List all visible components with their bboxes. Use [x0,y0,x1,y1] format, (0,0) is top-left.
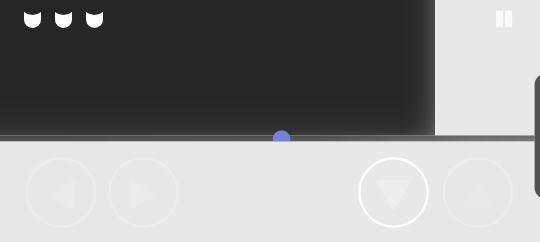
button[interactable]: Open side panel [534,73,540,199]
button[interactable]: Down [357,156,429,228]
button[interactable]: Pause [490,4,519,33]
